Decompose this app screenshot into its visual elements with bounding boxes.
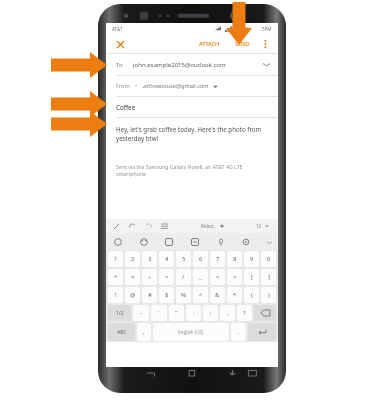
button[interactable]: 0 <box>261 251 276 267</box>
button[interactable]: 9 <box>244 251 259 267</box>
button[interactable]: $ <box>159 287 174 303</box>
button[interactable]: ? <box>237 305 252 321</box>
button[interactable]: 3 <box>142 251 157 267</box>
staticText: × <box>131 273 135 281</box>
button[interactable]: 1/2 <box>108 305 131 321</box>
button[interactable]: 8 <box>227 251 242 267</box>
staticText: Sent via the Samsung Galaxy Note8, an AT… <box>116 163 269 178</box>
button[interactable]: + <box>108 269 123 285</box>
button[interactable]: % <box>176 287 191 303</box>
button[interactable]: = <box>159 269 174 285</box>
button[interactable]: 6 <box>193 251 208 267</box>
staticText: SEND <box>235 40 250 47</box>
button[interactable]: Voice input <box>214 235 227 248</box>
button[interactable]: @ <box>125 287 140 303</box>
button[interactable]: ^ <box>193 287 208 303</box>
button[interactable]: To <box>106 54 278 75</box>
staticText: $ <box>165 291 169 299</box>
staticText: " <box>175 309 178 317</box>
staticText: ! <box>115 291 117 299</box>
button[interactable]: ] <box>261 269 276 285</box>
button[interactable]: GIF <box>162 235 175 248</box>
staticText: 4 <box>165 255 169 263</box>
button[interactable]: Format <box>160 222 169 231</box>
button[interactable]: 4 <box>159 251 174 267</box>
staticText: 5 <box>182 255 186 263</box>
button[interactable]: Keyboard settings <box>239 235 252 248</box>
button[interactable]: ( <box>244 287 259 303</box>
staticText: _ <box>199 273 202 281</box>
button[interactable]: Format <box>144 222 153 231</box>
button[interactable]: , <box>220 305 235 321</box>
staticText: 2 <box>131 255 135 263</box>
button[interactable]: 2 <box>125 251 140 267</box>
button[interactable]: ! <box>108 287 123 303</box>
button[interactable]: , <box>137 323 151 341</box>
button[interactable]: * <box>227 287 242 303</box>
staticText: 7 <box>216 255 220 263</box>
button[interactable]: ; <box>203 305 218 321</box>
button[interactable]: > <box>227 269 242 285</box>
button[interactable]: _ <box>193 269 208 285</box>
staticText: 6 <box>199 255 203 263</box>
button[interactable]: Hey, let's grab coffee today. Here's the… <box>106 118 278 219</box>
button[interactable]: Enter <box>248 323 276 341</box>
button[interactable]: : <box>186 305 201 321</box>
button[interactable]: Backspace <box>254 305 276 321</box>
staticText: Robot.. <box>201 223 216 229</box>
button[interactable]: Collapse <box>265 238 273 246</box>
button[interactable]: Format <box>112 222 121 231</box>
staticText: ? <box>243 309 246 317</box>
button[interactable]: English (US) <box>153 323 229 341</box>
staticText: ] <box>268 273 270 281</box>
staticText: • <box>135 82 138 90</box>
staticText: 8 <box>233 255 237 263</box>
staticText: @ <box>130 291 136 299</box>
button[interactable]: . <box>231 323 246 341</box>
button[interactable]: " <box>169 305 184 321</box>
button[interactable]: / <box>176 269 191 285</box>
staticText: ^ <box>199 291 203 299</box>
button[interactable]: Clipboard <box>188 235 201 248</box>
staticText: From <box>116 82 130 90</box>
staticText: . <box>238 328 240 336</box>
staticText: < <box>216 273 220 281</box>
button[interactable]: < <box>210 269 225 285</box>
button[interactable]: [ <box>244 269 259 285</box>
staticText: 3 <box>148 255 152 263</box>
button[interactable]: 5 <box>176 251 191 267</box>
staticText: 1 <box>114 255 118 263</box>
staticText: 10% <box>241 26 250 32</box>
staticText: [ <box>251 273 253 281</box>
button[interactable]: ) <box>261 287 276 303</box>
button[interactable]: SEND <box>232 40 253 47</box>
staticText: , <box>143 328 145 336</box>
staticText: % <box>181 291 186 299</box>
button[interactable]: 1 <box>108 251 123 267</box>
button[interactable]: Stickers <box>111 235 124 248</box>
button[interactable]: Close <box>113 37 127 51</box>
staticText: ) <box>268 291 270 299</box>
staticText: 1/2 <box>116 310 124 317</box>
button[interactable]: - <box>133 305 149 321</box>
button[interactable]: ÷ <box>142 269 157 285</box>
staticText: atthowtouse@gmail.com <box>143 82 209 90</box>
button[interactable]: From <box>106 76 278 96</box>
button[interactable]: ' <box>151 305 167 321</box>
staticText: + <box>114 273 118 281</box>
staticText: 5PM <box>262 26 272 32</box>
button[interactable]: ABC <box>108 323 135 341</box>
button[interactable]: More options <box>259 38 271 50</box>
button[interactable]: & <box>210 287 225 303</box>
button[interactable]: Format <box>128 222 137 231</box>
button[interactable]: 7 <box>210 251 225 267</box>
staticText: ÷ <box>148 273 152 281</box>
button[interactable]: # <box>142 287 157 303</box>
staticText: ABC <box>117 329 127 336</box>
button[interactable]: × <box>125 269 140 285</box>
staticText: & <box>215 291 220 299</box>
button[interactable]: ATTACH <box>196 40 223 47</box>
staticText: * <box>233 291 237 299</box>
button[interactable]: Emoji <box>137 235 150 248</box>
button[interactable]: Coffee <box>106 97 278 117</box>
